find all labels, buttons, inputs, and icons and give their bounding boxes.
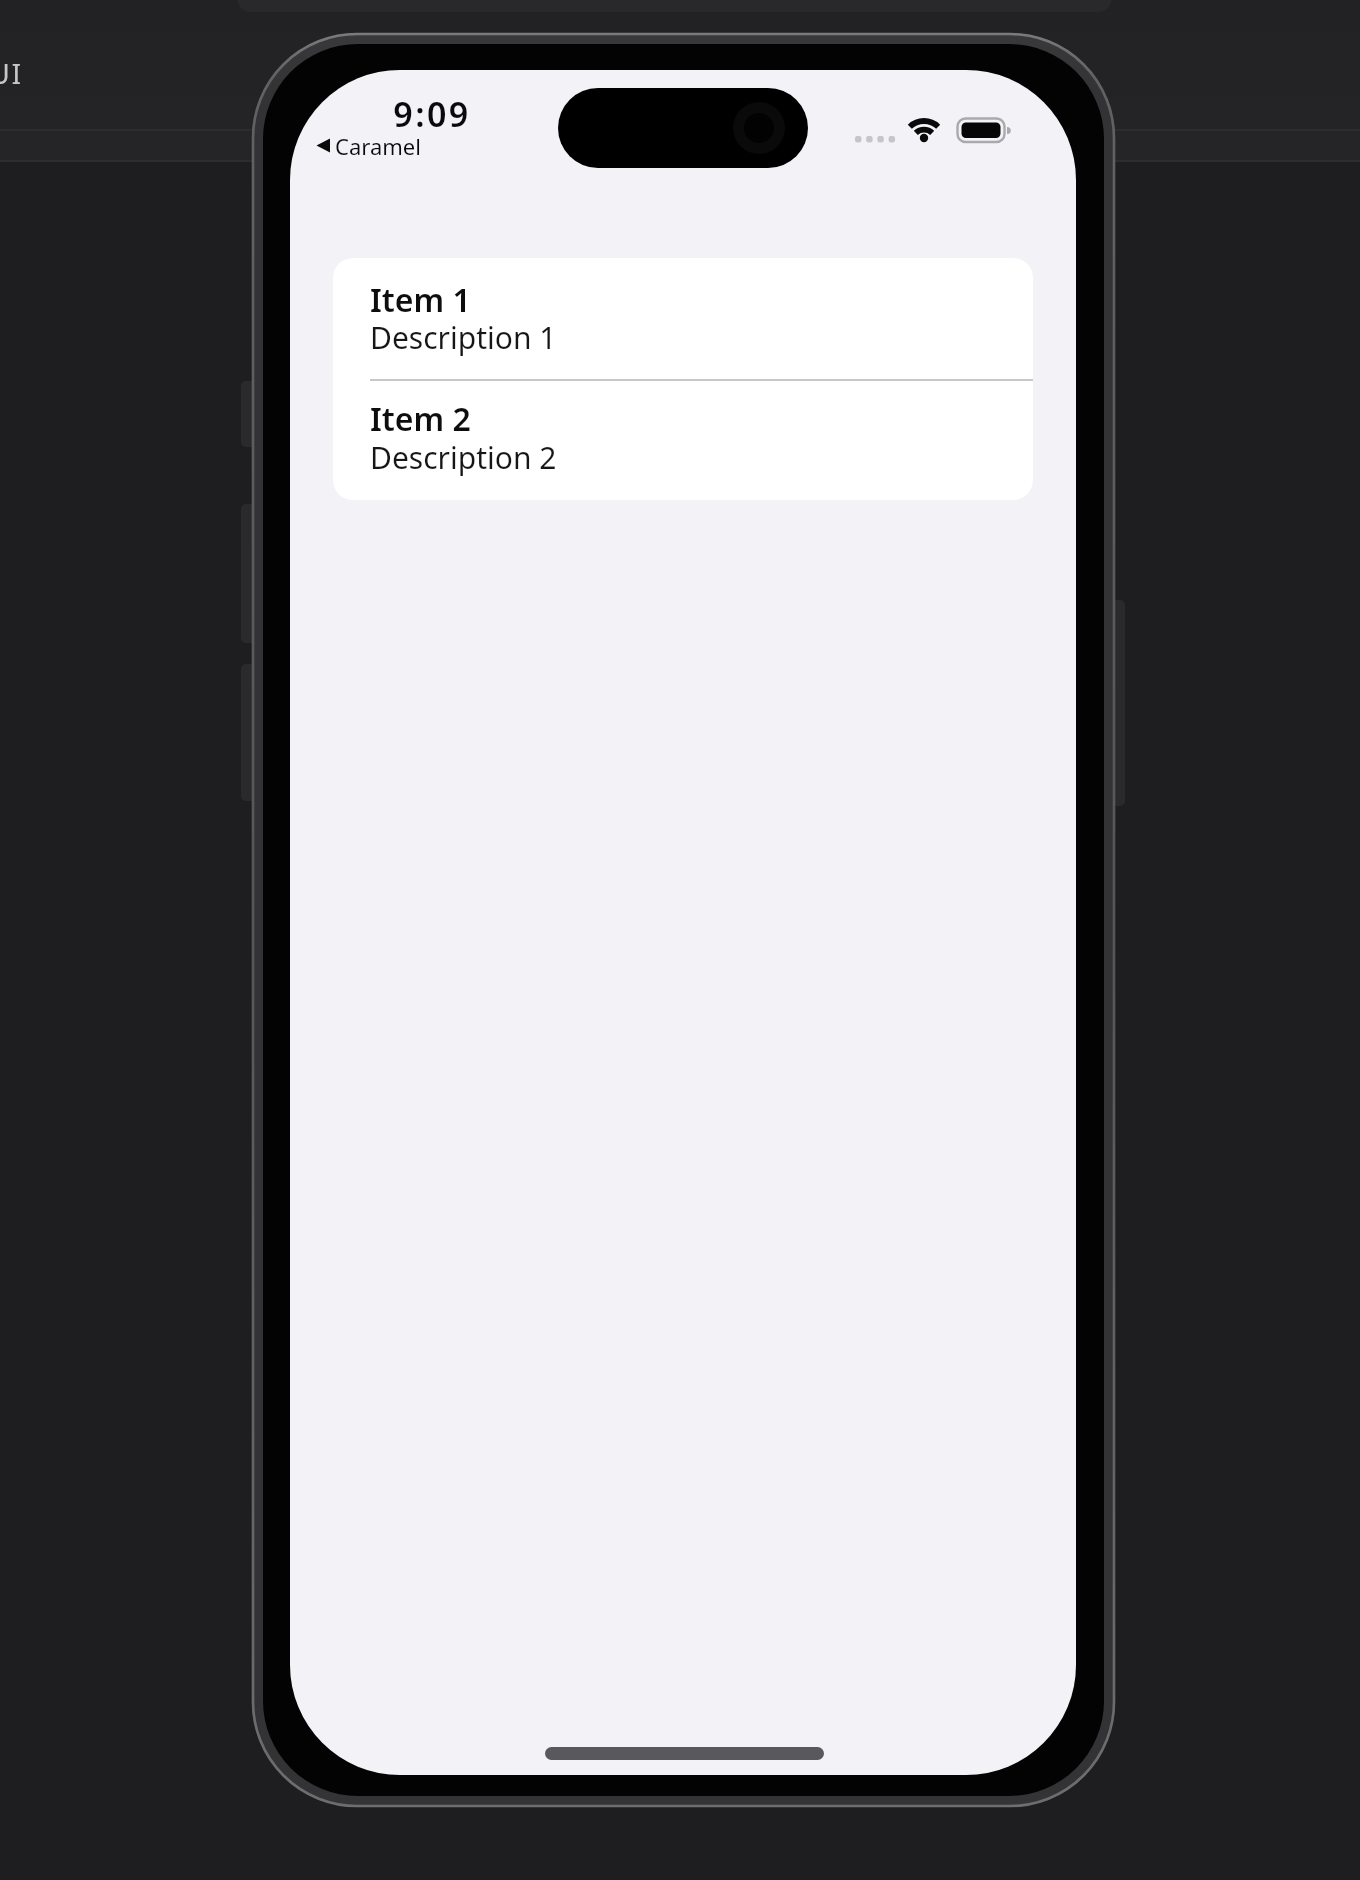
button[interactable]: Item 1: [333, 258, 1033, 380]
button[interactable]: Item 2: [333, 380, 1033, 500]
button[interactable]: Caramel: [310, 130, 440, 160]
staticText: Item 1: [370, 278, 471, 322]
staticText: Caramel: [335, 131, 421, 161]
staticText: Description 2: [370, 437, 557, 478]
staticText: 9:09: [372, 91, 492, 137]
staticText: Description 1: [370, 317, 557, 358]
staticText: UI: [0, 55, 23, 92]
staticText: Item 2: [370, 397, 471, 441]
